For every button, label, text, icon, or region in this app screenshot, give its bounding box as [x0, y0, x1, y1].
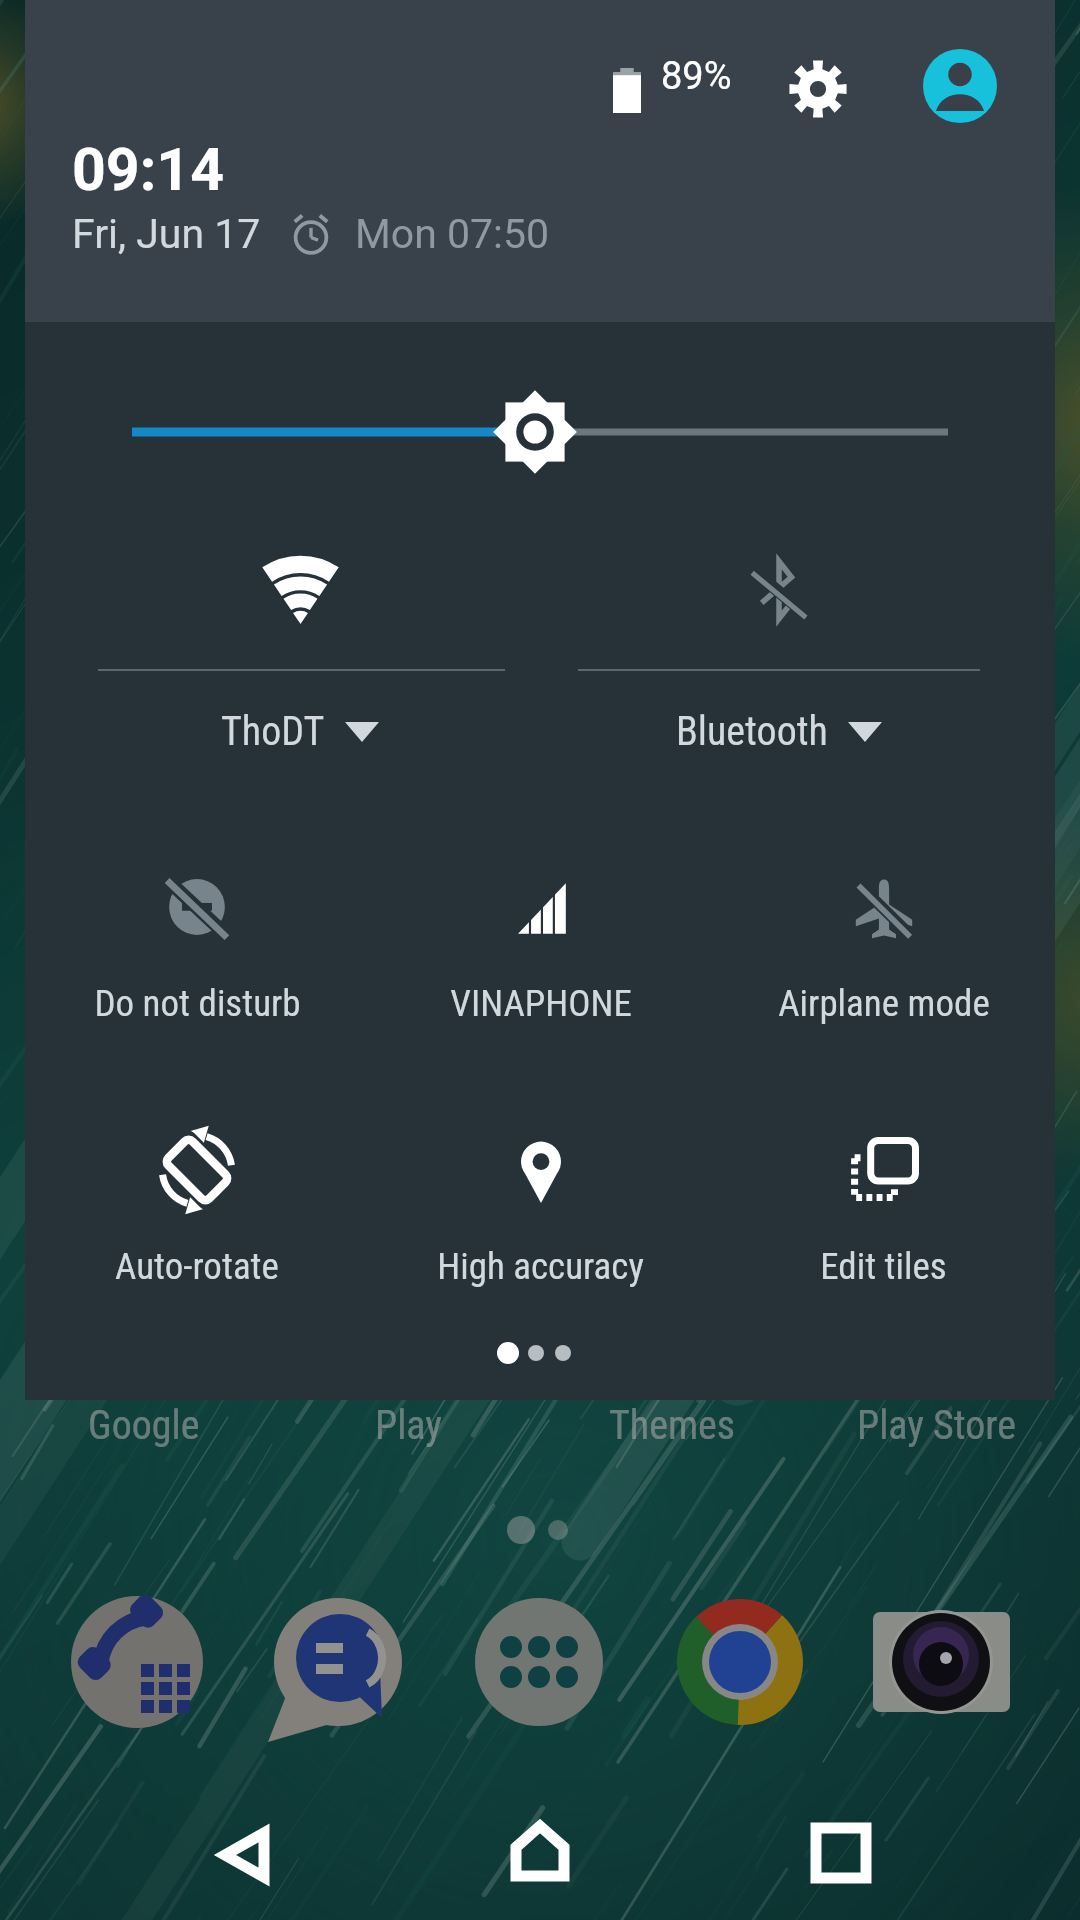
button[interactable]: High accuracy — [369, 1130, 712, 1288]
staticText: Play — [375, 1402, 442, 1449]
button[interactable]: Bluetooth — [529, 527, 1029, 755]
staticText: 09:14 — [72, 135, 225, 204]
button[interactable]: Recent apps — [761, 1798, 921, 1908]
button[interactable]: Edit tiles — [712, 1130, 1055, 1288]
staticText: High accuracy — [437, 1245, 644, 1288]
button[interactable]: Home — [460, 1796, 620, 1906]
staticText: Bluetooth — [676, 708, 828, 755]
staticText: Do not disturb — [94, 982, 301, 1025]
staticText: Mon 07:50 — [355, 210, 550, 258]
staticText: Fri, Jun 17 — [72, 210, 261, 258]
staticText: Play Store — [857, 1402, 1016, 1449]
button[interactable]: Back — [164, 1800, 324, 1910]
button[interactable]: Auto-rotate — [25, 1130, 369, 1288]
button[interactable]: User profile — [923, 49, 997, 123]
staticText: ThoDT — [221, 708, 325, 755]
staticText: Airplane mode — [778, 982, 990, 1025]
staticText: Google — [88, 1402, 200, 1449]
button[interactable]: Airplane mode — [712, 867, 1055, 1025]
staticText: VINAPHONE — [450, 982, 632, 1025]
staticText: 89% — [661, 54, 732, 99]
button[interactable]: VINAPHONE — [369, 867, 712, 1025]
button[interactable]: Brightness — [25, 382, 1055, 482]
staticText: Auto-rotate — [115, 1245, 279, 1288]
staticText: Edit tiles — [820, 1245, 947, 1288]
button[interactable]: Battery 89 percent — [595, 48, 765, 128]
button[interactable]: Settings — [773, 44, 863, 134]
button[interactable]: Do not disturb — [25, 867, 369, 1025]
staticText: Themes — [609, 1402, 735, 1449]
button[interactable]: ThoDT — [50, 527, 550, 755]
